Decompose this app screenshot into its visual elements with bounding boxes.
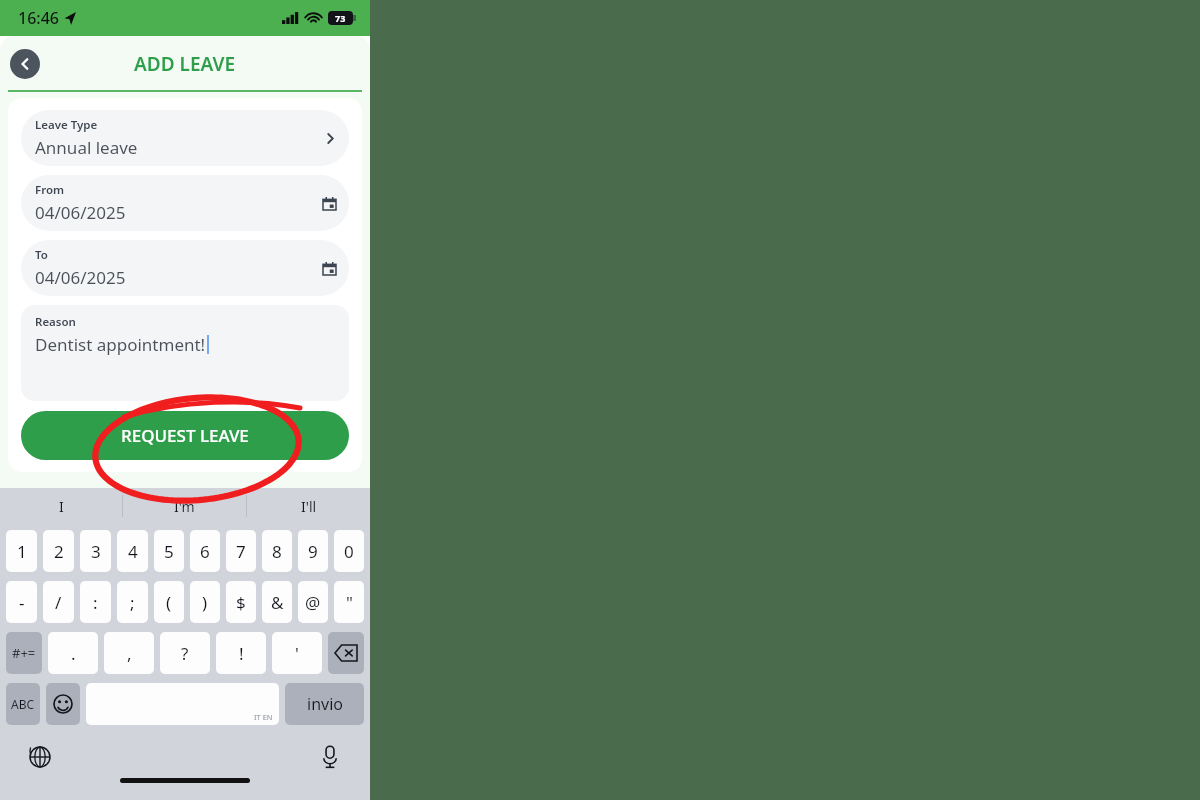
staticText: invio <box>307 693 343 715</box>
staticText: From <box>35 182 65 198</box>
staticText: 6 <box>200 540 210 563</box>
staticText: 8 <box>272 540 282 563</box>
staticText: 7 <box>236 540 246 563</box>
staticText: 1 <box>17 540 27 563</box>
button[interactable]: 3 <box>80 530 111 572</box>
button[interactable]: invio <box>285 683 364 725</box>
staticText: I <box>59 497 64 516</box>
staticText: #+= <box>12 644 36 662</box>
button[interactable]: $ <box>226 581 256 623</box>
button[interactable]: ABC <box>6 683 40 725</box>
staticText: To <box>35 247 48 263</box>
staticText: Reason <box>35 314 76 330</box>
button[interactable]: 2 <box>43 530 74 572</box>
button[interactable]: Change keyboard <box>26 743 54 771</box>
button[interactable]: IT EN <box>86 683 279 725</box>
button[interactable]: 0 <box>334 530 364 572</box>
staticText: REQUEST LEAVE <box>121 424 249 447</box>
staticText: ( <box>166 591 172 614</box>
button[interactable]: : <box>80 581 111 623</box>
button[interactable]: I'll <box>247 488 370 524</box>
button[interactable]: REQUEST LEAVE <box>21 411 349 460</box>
button[interactable]: , <box>104 632 154 674</box>
button[interactable]: / <box>43 581 74 623</box>
staticText: $ <box>236 591 246 614</box>
staticText: ADD LEAVE <box>134 51 236 77</box>
button[interactable]: Dictation <box>316 743 344 771</box>
button[interactable]: ; <box>117 581 148 623</box>
staticText: 5 <box>164 540 174 563</box>
button[interactable]: - <box>6 581 37 623</box>
staticText: 9 <box>308 540 318 563</box>
staticText: & <box>271 591 284 614</box>
button[interactable]: . <box>48 632 98 674</box>
button[interactable]: 5 <box>154 530 184 572</box>
staticText: Leave Type <box>35 117 98 133</box>
button[interactable]: 8 <box>262 530 292 572</box>
button[interactable]: ! <box>216 632 266 674</box>
staticText: @ <box>305 591 321 614</box>
staticText: ! <box>239 642 244 665</box>
staticText: Annual leave <box>35 136 138 159</box>
staticText: 2 <box>54 540 64 563</box>
staticText: / <box>55 591 62 614</box>
button[interactable]: ( <box>154 581 184 623</box>
staticText: . <box>71 642 76 665</box>
staticText: ' <box>295 642 299 665</box>
button[interactable]: @ <box>298 581 328 623</box>
button[interactable]: I'm <box>123 488 246 524</box>
button[interactable]: Reason <box>21 305 349 401</box>
staticText: ; <box>130 591 135 614</box>
staticText: I'm <box>174 497 195 516</box>
staticText: : <box>93 591 98 614</box>
button[interactable]: 9 <box>298 530 328 572</box>
button[interactable]: #+= <box>6 632 42 674</box>
button[interactable]: 4 <box>117 530 148 572</box>
staticText: 16:46 <box>18 7 59 29</box>
staticText: ABC <box>11 696 35 712</box>
staticText: Dentist appointment! <box>35 333 206 356</box>
button[interactable]: I <box>0 488 122 524</box>
staticText: 04/06/2025 <box>35 201 126 224</box>
button[interactable]: From <box>21 175 349 231</box>
button[interactable]: Emoji <box>46 683 80 725</box>
button[interactable]: ? <box>160 632 210 674</box>
staticText: 73 <box>335 12 346 24</box>
button[interactable]: 7 <box>226 530 256 572</box>
button[interactable]: ) <box>190 581 220 623</box>
button[interactable]: To <box>21 240 349 296</box>
button[interactable]: & <box>262 581 292 623</box>
staticText: , <box>127 642 132 665</box>
staticText: I'll <box>301 497 317 516</box>
button[interactable]: ' <box>272 632 322 674</box>
button[interactable]: Backspace <box>328 632 364 674</box>
staticText: " <box>346 591 353 614</box>
button[interactable]: " <box>334 581 364 623</box>
staticText: - <box>19 591 25 614</box>
button[interactable]: Leave Type <box>21 110 349 166</box>
button[interactable]: Back <box>10 49 40 79</box>
staticText: 3 <box>91 540 101 563</box>
staticText: IT EN <box>254 712 273 722</box>
button[interactable]: 6 <box>190 530 220 572</box>
staticText: 4 <box>128 540 138 563</box>
staticText: 0 <box>344 540 354 563</box>
button[interactable]: 1 <box>6 530 37 572</box>
staticText: 04/06/2025 <box>35 266 126 289</box>
staticText: ) <box>202 591 208 614</box>
staticText: ? <box>181 642 189 665</box>
